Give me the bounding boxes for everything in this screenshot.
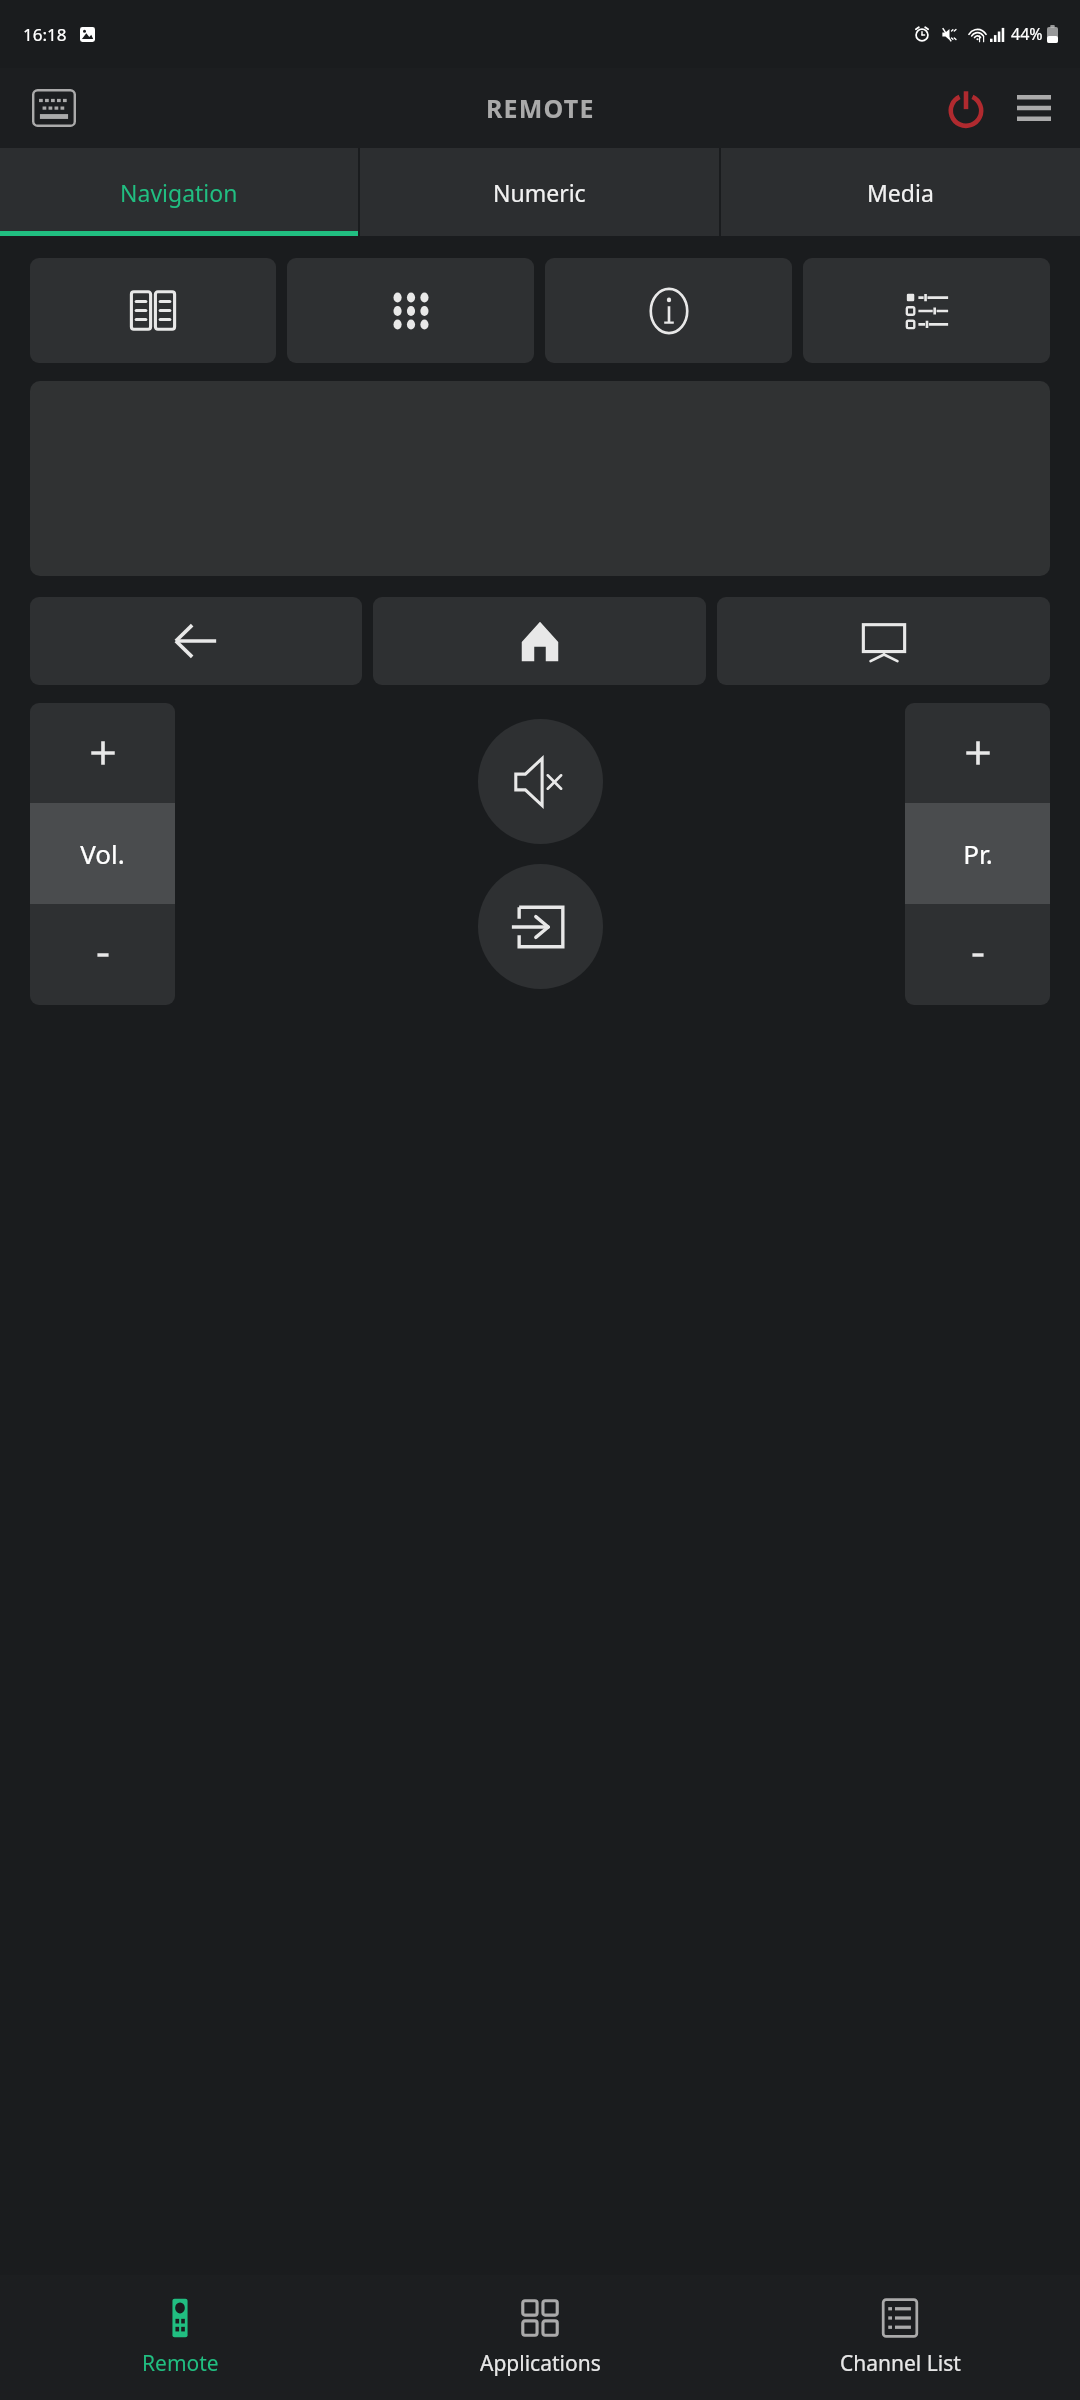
staticText: 44% (1011, 23, 1043, 45)
staticText: Remote (142, 2349, 219, 2378)
button[interactable]: Media (721, 148, 1080, 236)
button[interactable]: Navigation (0, 148, 358, 236)
staticText: 16:18 (23, 23, 67, 46)
staticText: Navigation (120, 177, 238, 208)
button[interactable]: Source (717, 597, 1050, 685)
button[interactable]: Pr. (905, 803, 1050, 904)
button[interactable]: Numeric (360, 148, 719, 236)
button[interactable]: Applications (360, 2275, 720, 2400)
staticText: Media (867, 177, 934, 208)
button[interactable]: Home (373, 597, 706, 685)
button[interactable]: Guide (30, 258, 276, 363)
button[interactable]: Remote (0, 2275, 360, 2400)
staticText: Channel List (840, 2349, 961, 2378)
staticText: Numeric (493, 177, 586, 208)
button[interactable]: Back (30, 597, 362, 685)
button[interactable]: Vol. up (30, 703, 175, 803)
button[interactable]: Vol. (30, 803, 175, 904)
staticText: REMOTE (486, 91, 595, 125)
button[interactable]: Keyboard (26, 87, 82, 129)
staticText: Vol. (80, 836, 125, 871)
staticText: Applications (480, 2349, 601, 2378)
staticText: Pr. (963, 836, 993, 871)
button[interactable]: Input source (478, 864, 603, 989)
button[interactable]: Power (938, 80, 994, 136)
button[interactable]: Info (545, 258, 792, 363)
button[interactable]: Vol. down (30, 904, 175, 1005)
button[interactable]: Pr. down (905, 904, 1050, 1005)
button[interactable]: Mute (478, 719, 603, 844)
button[interactable]: Apps grid (287, 258, 534, 363)
button[interactable]: Channel List (720, 2275, 1080, 2400)
button[interactable]: Menu (1008, 82, 1060, 134)
button[interactable]: Pr. up (905, 703, 1050, 803)
button[interactable]: Settings (803, 258, 1050, 363)
